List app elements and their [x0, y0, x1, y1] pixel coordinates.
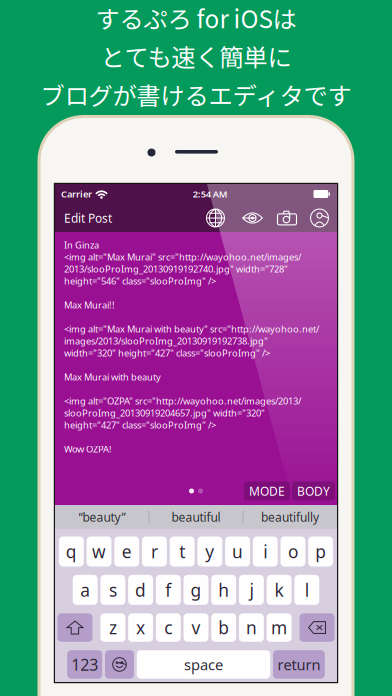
staticText: ブログが書けるエディタです	[40, 77, 351, 112]
staticText: o	[288, 540, 298, 563]
staticText: slooProImg_20130919204657.jpg" width="32…	[64, 407, 265, 419]
staticText: m	[271, 616, 287, 639]
button[interactable]: i	[253, 536, 278, 566]
staticText: Max Murai with beauty	[64, 371, 161, 383]
button[interactable]: space	[137, 650, 270, 679]
staticText: q	[66, 540, 77, 563]
button[interactable]: a	[73, 575, 98, 605]
button[interactable]: e	[114, 536, 139, 566]
button[interactable]: Preview	[242, 212, 263, 224]
button[interactable]: MODE	[244, 481, 290, 500]
staticText: c	[164, 616, 172, 639]
button[interactable]: Delete	[299, 613, 334, 642]
staticText: d	[135, 578, 146, 601]
staticText: <img alt="Max Murai" src="http://wayohoo…	[64, 251, 301, 263]
staticText: BODY	[297, 483, 330, 499]
button[interactable]: k	[267, 575, 291, 605]
button[interactable]: b	[211, 613, 236, 642]
button[interactable]: d	[128, 575, 153, 605]
button[interactable]: Insert photo	[277, 211, 297, 225]
staticText: n	[246, 616, 257, 639]
staticText: u	[232, 540, 243, 563]
button[interactable]: z	[100, 613, 125, 642]
button[interactable]: Account	[310, 208, 329, 227]
staticText: height="546" class="slooProImg" />	[64, 275, 216, 287]
staticText: images/2013/slooProImg_20130919192738.jp…	[64, 335, 268, 347]
staticText: s	[109, 578, 117, 601]
button[interactable]: x	[128, 613, 153, 642]
staticText: e	[122, 540, 132, 563]
staticText: p	[315, 540, 326, 563]
button[interactable]: Emoji	[105, 650, 134, 679]
button[interactable]: u	[225, 536, 250, 566]
staticText: h	[218, 578, 229, 601]
button[interactable]: p	[308, 536, 333, 566]
button[interactable]: Shift	[57, 613, 92, 642]
button[interactable]: n	[239, 613, 264, 642]
staticText: 2013/slooProImg_20130919192740.jpg" widt…	[64, 263, 288, 275]
staticText: space	[184, 655, 223, 674]
button[interactable]: return	[273, 650, 325, 679]
staticText: a	[80, 578, 90, 601]
staticText: beautiful	[171, 509, 220, 525]
staticText: 123	[71, 654, 98, 675]
button[interactable]: 123	[67, 650, 102, 679]
button[interactable]: beautifully	[243, 505, 337, 529]
staticText: Carrier	[61, 188, 92, 200]
staticText: <img alt="OZPA" src="http://wayohoo.net/…	[64, 395, 301, 407]
staticText: MODE	[249, 483, 285, 499]
staticText: Edit Post	[64, 210, 112, 226]
staticText: beautifully	[261, 509, 319, 525]
staticText: v	[191, 616, 200, 639]
button[interactable]: h	[211, 575, 236, 605]
staticText: Wow OZPA!	[64, 443, 112, 455]
button[interactable]: f	[156, 575, 181, 605]
button[interactable]: y	[197, 536, 222, 566]
staticText: g	[190, 578, 201, 601]
button[interactable]: Publish	[206, 208, 225, 227]
button[interactable]: s	[100, 575, 125, 605]
button[interactable]: l	[294, 575, 319, 605]
button[interactable]: beautiful	[149, 505, 243, 529]
staticText: In Ginza	[64, 239, 99, 251]
staticText: f	[165, 578, 171, 601]
staticText: t	[179, 540, 185, 563]
staticText: Max Murai!!	[64, 299, 115, 311]
button[interactable]: g	[183, 575, 208, 605]
button[interactable]: t	[170, 536, 195, 566]
staticText: k	[275, 578, 284, 601]
staticText: w	[92, 540, 106, 563]
staticText: z	[109, 616, 117, 639]
staticText: y	[205, 540, 214, 563]
button[interactable]: q	[59, 536, 84, 566]
staticText: width="320" height="427" class="slooProI…	[64, 347, 270, 359]
staticText: x	[136, 616, 145, 639]
button[interactable]: m	[267, 613, 291, 642]
button[interactable]: o	[280, 536, 305, 566]
staticText: i	[263, 540, 267, 563]
staticText: するぷろ for iOSは	[95, 0, 296, 35]
staticText: height="427" class="slooProImg" />	[64, 419, 216, 431]
button[interactable]: BODY	[292, 481, 335, 500]
staticText: “beauty”	[78, 509, 125, 525]
button[interactable]: w	[87, 536, 111, 566]
staticText: 2:54 AM	[193, 188, 228, 200]
button[interactable]: c	[156, 613, 181, 642]
staticText: j	[249, 578, 253, 601]
button[interactable]: v	[184, 613, 208, 642]
button[interactable]: “beauty”	[55, 505, 149, 529]
staticText: b	[218, 616, 229, 639]
button[interactable]: j	[239, 575, 264, 605]
staticText: l	[305, 578, 309, 601]
staticText: return	[277, 655, 320, 674]
staticText: とても速く簡単に	[100, 38, 291, 73]
button[interactable]: r	[142, 536, 167, 566]
staticText: <img alt="Max Murai with beauty" src="ht…	[64, 323, 319, 335]
staticText: r	[151, 540, 158, 563]
